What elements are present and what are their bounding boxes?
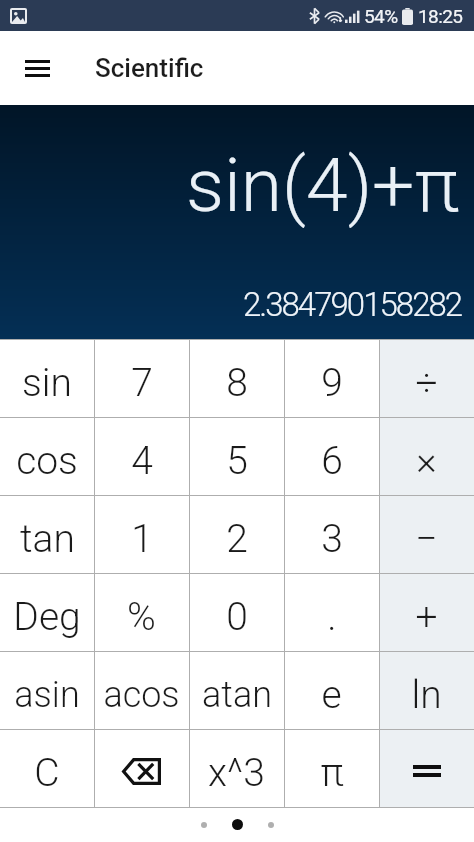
other: Backspace bbox=[122, 758, 161, 785]
button[interactable]: x^3 bbox=[189, 729, 284, 807]
staticText: 0 bbox=[226, 594, 248, 640]
button[interactable]: Backspace bbox=[94, 729, 189, 807]
button[interactable]: C bbox=[0, 729, 94, 807]
button[interactable]: % bbox=[94, 573, 189, 651]
staticText: 7 bbox=[131, 360, 153, 406]
staticText: x^3 bbox=[208, 750, 265, 796]
staticText: 9 bbox=[321, 360, 343, 406]
button[interactable]: sin bbox=[0, 339, 94, 417]
button[interactable]: Equals bbox=[379, 729, 474, 807]
button[interactable]: acos bbox=[94, 651, 189, 729]
button[interactable]: e bbox=[284, 651, 379, 729]
staticText: acos bbox=[103, 674, 180, 716]
staticText: 1 bbox=[131, 516, 153, 562]
staticText: cos bbox=[16, 438, 78, 484]
staticText: tan bbox=[20, 516, 75, 562]
button[interactable]: 3 bbox=[284, 495, 379, 573]
staticText: 8 bbox=[226, 360, 248, 406]
button[interactable]: ln bbox=[379, 651, 474, 729]
button[interactable]: ÷ bbox=[379, 339, 474, 417]
button[interactable]: 7 bbox=[94, 339, 189, 417]
staticText: 18:25 bbox=[418, 5, 463, 27]
button[interactable]: 6 bbox=[284, 417, 379, 495]
button[interactable]: 9 bbox=[284, 339, 379, 417]
button[interactable]: 8 bbox=[189, 339, 284, 417]
button[interactable]: . bbox=[284, 573, 379, 651]
button[interactable]: × bbox=[379, 417, 474, 495]
staticText: 4 bbox=[131, 438, 153, 484]
button[interactable]: asin bbox=[0, 651, 94, 729]
button[interactable]: 2 bbox=[189, 495, 284, 573]
staticText: 6 bbox=[321, 438, 343, 484]
staticText: π bbox=[320, 750, 344, 796]
staticText: 5 bbox=[226, 438, 248, 484]
button[interactable]: Open navigation menu bbox=[9, 40, 65, 96]
staticText: + bbox=[415, 594, 438, 640]
staticText: . bbox=[327, 594, 337, 640]
staticText: × bbox=[416, 438, 437, 484]
button[interactable]: 5 bbox=[189, 417, 284, 495]
staticText: e bbox=[321, 672, 342, 718]
staticText: 2 bbox=[226, 516, 248, 562]
staticText: atan bbox=[202, 674, 272, 716]
other: Equals bbox=[413, 765, 441, 777]
staticText: sin(4)+π bbox=[186, 141, 460, 229]
staticText: 3 bbox=[321, 516, 343, 562]
staticText: − bbox=[415, 516, 438, 562]
button[interactable]: atan bbox=[189, 651, 284, 729]
staticText: asin bbox=[14, 674, 80, 716]
staticText: 54% bbox=[364, 5, 398, 27]
button[interactable]: tan bbox=[0, 495, 94, 573]
staticText: Scientific bbox=[95, 53, 204, 83]
staticText: ÷ bbox=[415, 360, 438, 406]
button[interactable]: + bbox=[379, 573, 474, 651]
button[interactable]: 0 bbox=[189, 573, 284, 651]
button[interactable]: Deg bbox=[0, 573, 94, 651]
staticText: ln bbox=[411, 672, 442, 718]
button[interactable]: 4 bbox=[94, 417, 189, 495]
staticText: C bbox=[34, 750, 60, 796]
button[interactable]: cos bbox=[0, 417, 94, 495]
staticText: 2.384790158282 bbox=[243, 285, 462, 324]
button[interactable]: − bbox=[379, 495, 474, 573]
staticText: sin bbox=[22, 360, 72, 406]
button[interactable]: 1 bbox=[94, 495, 189, 573]
staticText: % bbox=[127, 594, 156, 640]
button[interactable]: π bbox=[284, 729, 379, 807]
staticText: Deg bbox=[13, 594, 81, 640]
